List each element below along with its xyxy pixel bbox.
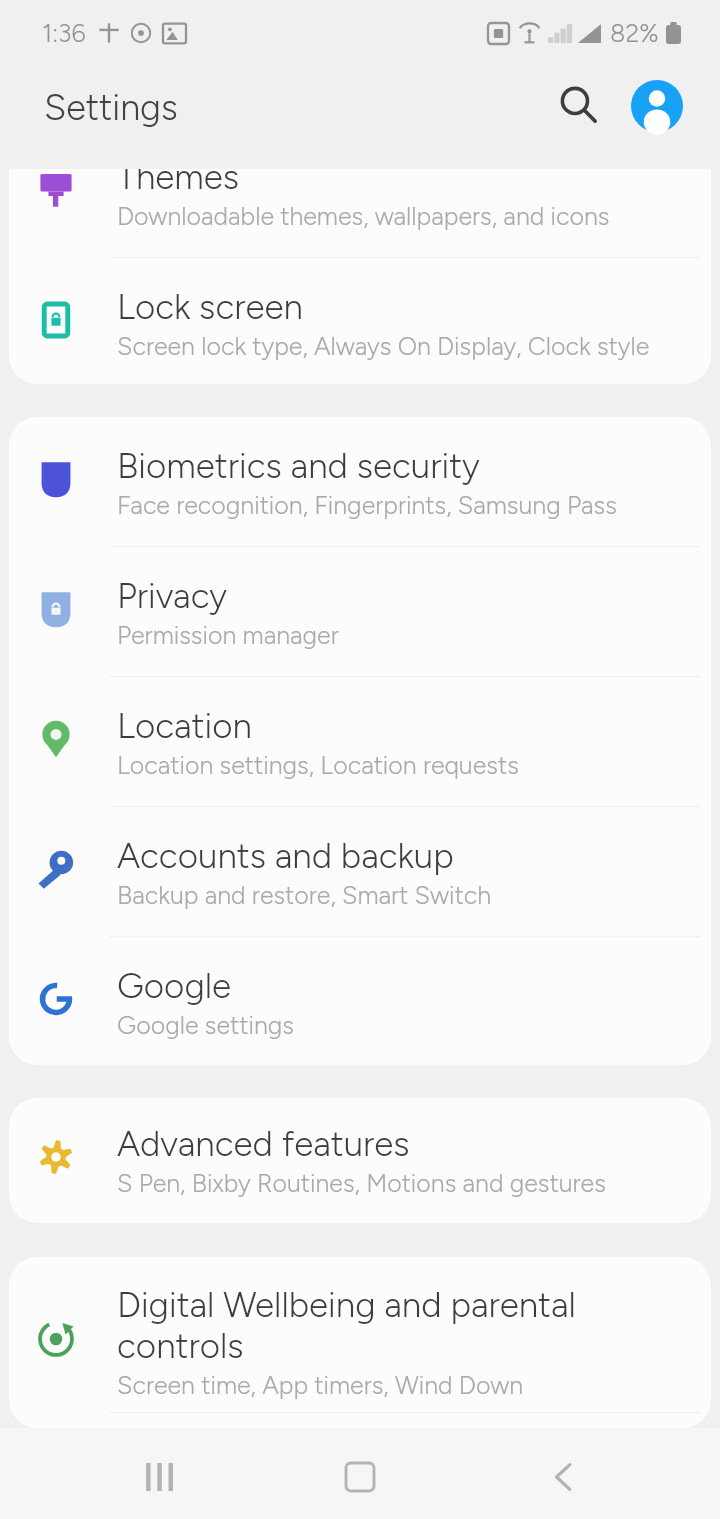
button[interactable] xyxy=(9,169,711,258)
staticText: 1:36 xyxy=(42,18,86,48)
button[interactable]: Account xyxy=(623,72,691,140)
staticText: Biometrics and security xyxy=(117,445,480,487)
staticText: Location xyxy=(117,705,252,747)
button[interactable]: Search xyxy=(544,70,612,138)
staticText: Accounts and backup xyxy=(117,835,454,877)
staticText: Screen time, App timers, Wind Down xyxy=(117,1370,524,1400)
button[interactable] xyxy=(9,1257,711,1412)
button[interactable] xyxy=(9,807,711,937)
staticText: Settings xyxy=(44,86,178,129)
staticText: 82% xyxy=(610,18,659,48)
button[interactable]: Home xyxy=(314,1433,406,1519)
staticText: S Pen, Bixby Routines, Motions and gestu… xyxy=(117,1168,606,1198)
button[interactable] xyxy=(9,1098,711,1223)
staticText: Downloadable themes, wallpapers, and ico… xyxy=(117,201,610,231)
button[interactable] xyxy=(9,547,711,677)
staticText: Face recognition, Fingerprints, Samsung … xyxy=(117,490,617,520)
button[interactable]: Recents xyxy=(113,1433,205,1519)
staticText: Privacy xyxy=(117,575,227,617)
staticText: Location settings, Location requests xyxy=(117,750,519,780)
button[interactable] xyxy=(9,258,711,384)
button[interactable] xyxy=(9,417,711,547)
staticText: Themes xyxy=(117,169,240,198)
staticText: Permission manager xyxy=(117,620,339,650)
staticText: Advanced features xyxy=(117,1123,410,1165)
button[interactable] xyxy=(9,937,711,1065)
staticText: Digital Wellbeing and parental controls xyxy=(117,1284,576,1367)
staticText: Backup and restore, Smart Switch xyxy=(117,880,492,910)
staticText: Screen lock type, Always On Display, Clo… xyxy=(117,331,650,361)
staticText: Google settings xyxy=(117,1010,294,1040)
button[interactable]: Back xyxy=(517,1433,609,1519)
staticText: Lock screen xyxy=(117,286,303,328)
staticText: Google xyxy=(117,965,232,1007)
button[interactable] xyxy=(9,677,711,807)
